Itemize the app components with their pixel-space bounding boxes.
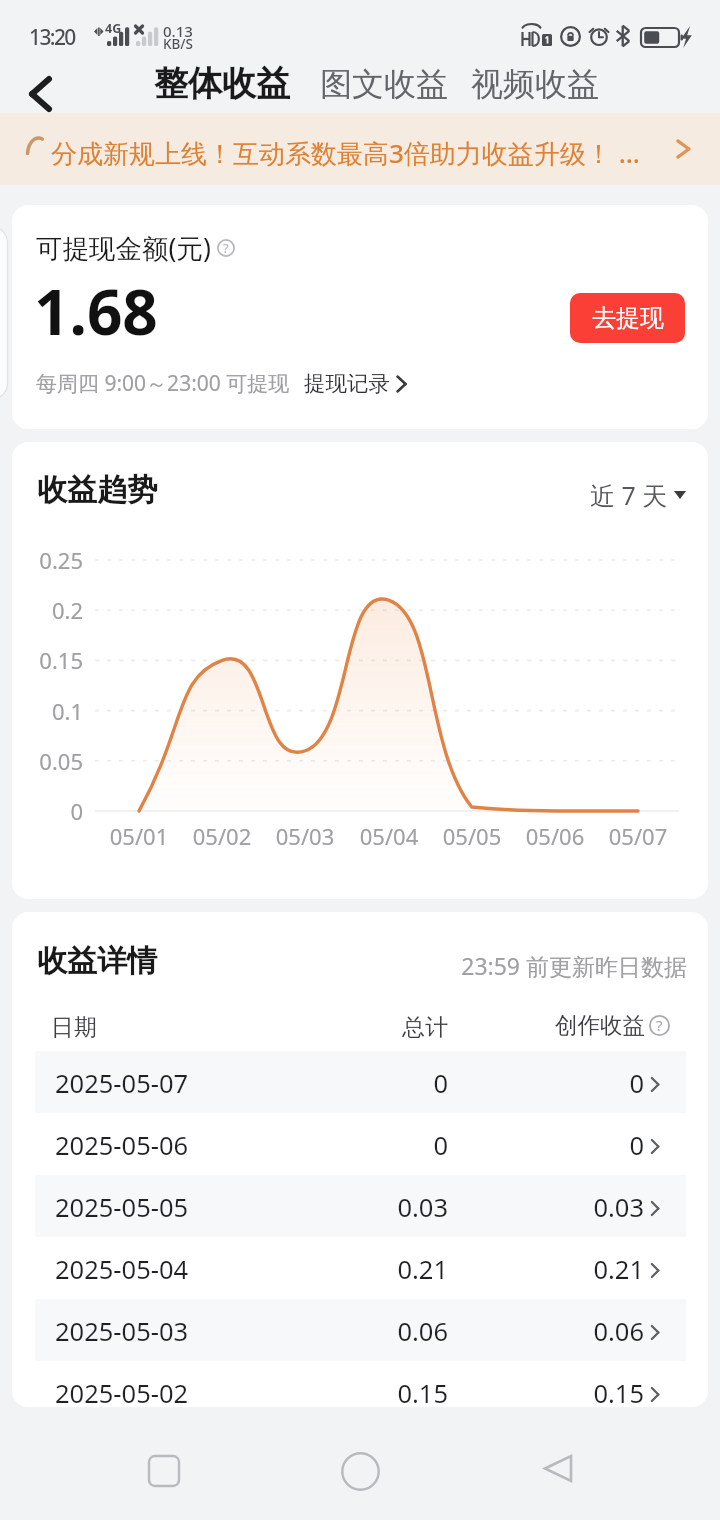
button[interactable]: 图文收益 (312, 60, 456, 108)
staticText: 05/03 (260, 821, 350, 851)
staticText: 整体收益 (154, 62, 290, 105)
staticText: 收益详情 (37, 942, 157, 980)
staticText: 0 (12, 796, 83, 826)
staticText: 视频收益 (471, 64, 599, 104)
staticText: 0.25 (12, 545, 83, 575)
staticText: 提现记录 (304, 370, 390, 397)
staticText: 0.21 (484, 1252, 644, 1287)
staticText: 2025-05-02 (55, 1376, 189, 1407)
button[interactable]: 提现记录 (304, 370, 410, 397)
staticText: 05/01 (94, 821, 184, 851)
staticText: 2025-05-07 (55, 1066, 189, 1101)
button[interactable]: 分成新规上线！互动系数最高3倍助力收益升级！ … (0, 113, 720, 185)
staticText: 05/07 (593, 821, 683, 851)
staticText: ? (656, 1015, 663, 1036)
staticText: 收益趋势 (37, 471, 157, 509)
staticText: 05/06 (510, 821, 600, 851)
staticText: 去提现 (592, 303, 664, 333)
staticText: 0.15 (12, 645, 83, 675)
staticText: 0.03 (288, 1190, 448, 1225)
staticText: 0.06 (288, 1314, 448, 1349)
staticText: 0 (288, 1128, 448, 1163)
staticText: 0 (484, 1066, 644, 1101)
staticText: 1.68 (34, 269, 158, 353)
staticText: 0.06 (484, 1314, 644, 1349)
staticText: 23:59 前更新昨日数据 (412, 950, 687, 981)
staticText: 4G (105, 20, 122, 37)
staticText: 2025-05-04 (55, 1252, 189, 1287)
staticText: 每周四 9:00～23:00 可提现 (36, 369, 290, 398)
staticText: 05/05 (427, 821, 517, 851)
staticText: 0 (484, 1128, 644, 1163)
staticText: 0.15 (288, 1376, 448, 1407)
staticText: 0.03 (484, 1190, 644, 1225)
staticText: 总计 (402, 1013, 448, 1042)
staticText: 创作收益 (555, 1011, 645, 1039)
button[interactable]: 2025-05-05 (35, 1175, 686, 1237)
staticText: 05/04 (344, 821, 434, 851)
button[interactable]: 2025-05-04 (35, 1237, 686, 1299)
button[interactable]: 去提现 (570, 293, 685, 343)
staticText: 0.05 (12, 746, 83, 776)
staticText: 2025-05-06 (55, 1128, 189, 1163)
button[interactable]: 2025-05-06 (35, 1113, 686, 1175)
staticText: 13:20 (29, 23, 75, 52)
staticText: 0.2 (12, 595, 83, 625)
button[interactable]: 2025-05-07 (35, 1051, 686, 1113)
staticText: KB/S (163, 35, 193, 53)
staticText: 2025-05-05 (55, 1190, 189, 1225)
staticText: 近 7 天 (590, 478, 668, 512)
button[interactable]: 视频收益 (463, 60, 607, 108)
button[interactable]: Recents (104, 1436, 224, 1506)
staticText: 0.21 (288, 1252, 448, 1287)
staticText: 0.15 (484, 1376, 644, 1407)
staticText: 05/02 (177, 821, 267, 851)
staticText: 分成新规上线！互动系数最高3倍助力收益升级！ … (51, 135, 640, 171)
button[interactable]: Home (300, 1436, 420, 1506)
staticText: 图文收益 (320, 64, 448, 104)
staticText: ? (223, 239, 229, 257)
staticText: 2025-05-03 (55, 1314, 189, 1349)
button[interactable]: 2025-05-02 (35, 1361, 686, 1407)
button[interactable]: Back (496, 1436, 616, 1506)
button[interactable]: 2025-05-03 (35, 1299, 686, 1361)
button[interactable]: Back (14, 62, 74, 122)
staticText: 0.1 (12, 696, 83, 726)
staticText: 可提现金额(元) (36, 230, 211, 266)
staticText: 0.13 (163, 21, 193, 41)
staticText: 0 (288, 1066, 448, 1101)
button[interactable]: 近 7 天 (590, 478, 686, 512)
button[interactable]: 整体收益 (146, 58, 298, 109)
staticText: 日期 (51, 1013, 97, 1042)
